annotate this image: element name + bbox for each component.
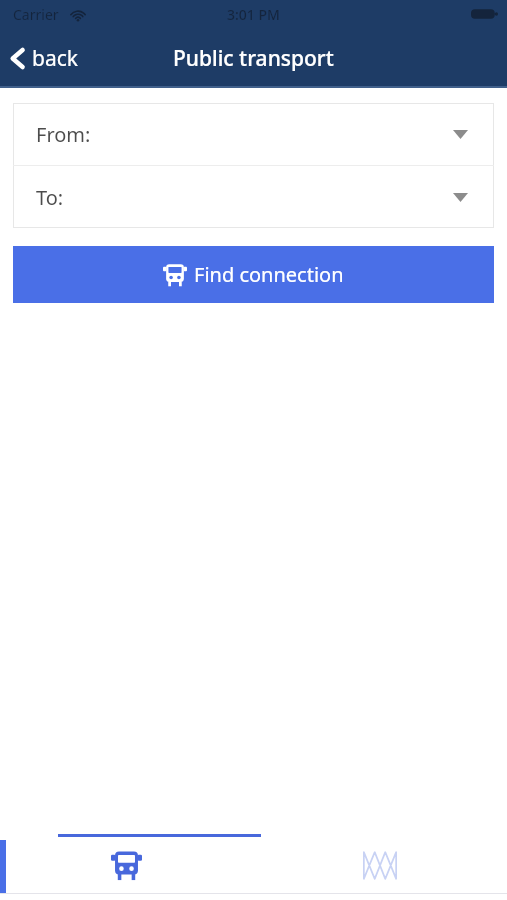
staticText: To: [36,184,64,211]
staticText: 3:01 PM [227,5,280,24]
button[interactable]: Find connection [13,246,494,303]
button[interactable]: Map [253,837,507,894]
staticText: Public transport [173,44,334,73]
button[interactable]: From: [13,103,494,165]
button[interactable]: To: [13,166,494,228]
button[interactable]: back [0,35,94,82]
staticText: Find connection [194,261,344,288]
staticText: Carrier [13,5,59,24]
staticText: back [32,44,78,73]
staticText: From: [36,121,91,148]
button[interactable]: Public transport [0,837,253,894]
